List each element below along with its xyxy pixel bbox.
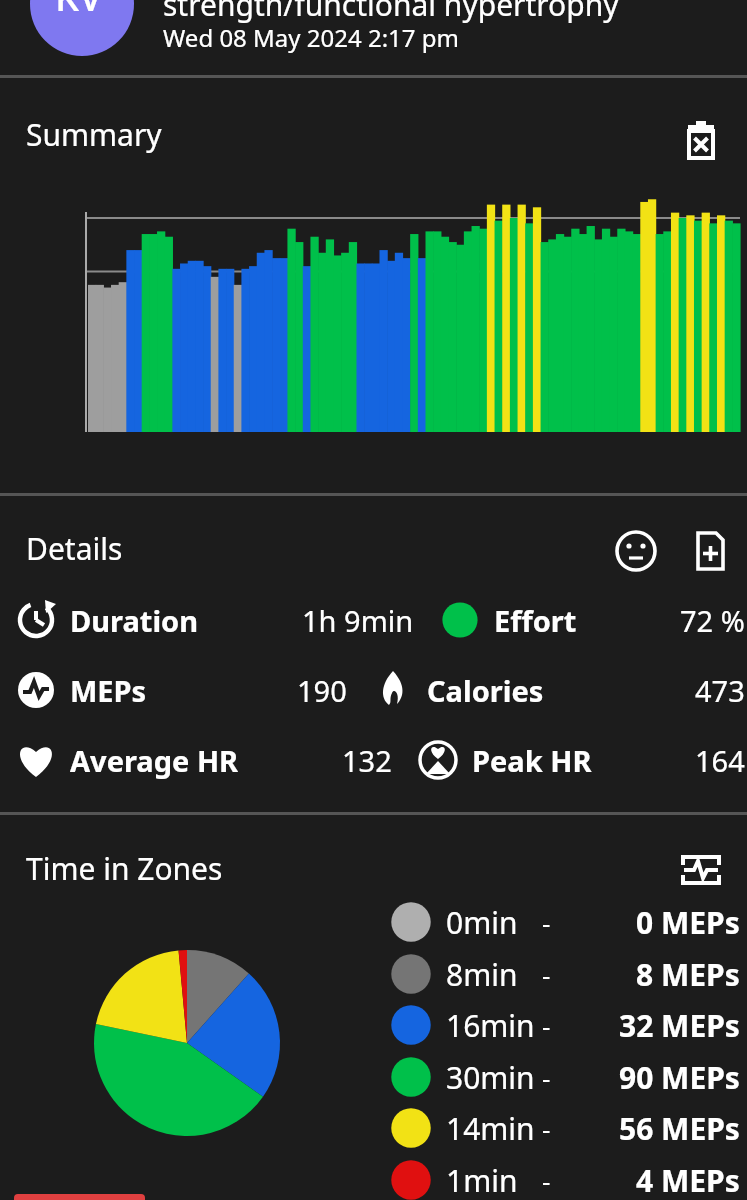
staticText: KV [55,0,103,22]
button[interactable]: Zone chart [678,847,724,893]
staticText: 72 % [680,601,745,640]
button[interactable]: Add note [687,528,733,574]
staticText: - [542,1111,551,1146]
staticText: 14min [446,1108,542,1149]
staticText: 0min [446,902,542,943]
button[interactable]: Delete [678,118,724,164]
staticText: 32 MEPs [619,1005,740,1046]
button[interactable]: 16min [390,1001,740,1049]
button[interactable]: Delete workout [14,1194,145,1200]
staticText: 16min [446,1005,542,1046]
staticText: Effort [494,601,577,640]
button[interactable]: Duration [0,594,747,646]
button[interactable]: 30min [390,1053,740,1101]
staticText: - [542,1008,551,1043]
staticText: - [542,957,551,992]
staticText: Peak HR [472,741,592,780]
staticText: 90 MEPs [619,1057,740,1098]
staticText: 4 MEPs [636,1160,740,1200]
staticText: 132 [342,741,392,780]
staticText: 56 MEPs [619,1108,740,1149]
staticText: 30min [446,1057,542,1098]
button[interactable]: 8min [390,950,740,998]
staticText: 473 [695,671,745,710]
staticText: 1h 9min [302,601,414,640]
staticText: Time in Zones [26,848,223,889]
staticText: 0 MEPs [636,902,740,943]
staticText: - [542,1163,551,1198]
button[interactable]: 1min [390,1156,740,1200]
staticText: 164 [695,741,745,780]
staticText: 8min [446,954,542,995]
staticText: 1min [446,1160,542,1200]
button[interactable]: 0min [390,898,740,946]
button[interactable]: MEPs [0,664,747,716]
staticText: Average HR [70,741,239,780]
button[interactable]: 14min [390,1104,740,1152]
button[interactable]: Average HR [0,734,747,786]
button[interactable]: Feeling [613,528,659,574]
staticText: Wed 08 May 2024 2:17 pm [163,21,459,54]
staticText: 8 MEPs [636,954,740,995]
staticText: 190 [297,671,347,710]
staticText: strength/functional hypertrophy [163,0,619,25]
staticText: - [542,1060,551,1095]
staticText: - [542,905,551,940]
staticText: Summary [26,114,162,155]
staticText: Calories [427,671,544,710]
staticText: MEPs [70,671,147,710]
staticText: Duration [70,601,199,640]
staticText: Details [26,528,123,569]
